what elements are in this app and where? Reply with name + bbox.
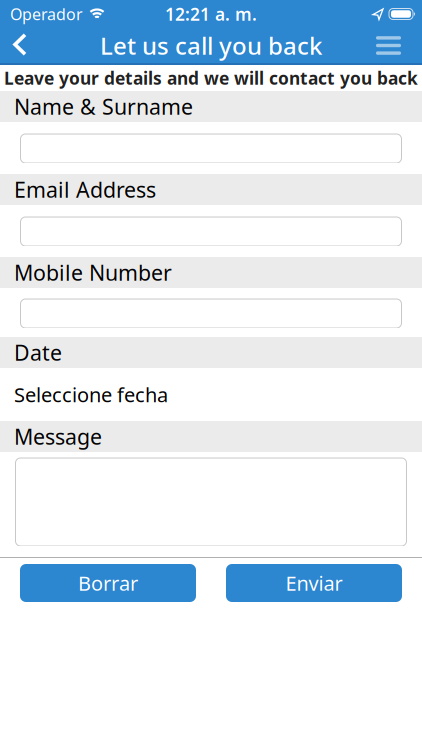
staticText: Message (14, 422, 102, 451)
button[interactable]: Enviar (226, 564, 402, 602)
staticText: Borrar (78, 570, 138, 596)
staticText: Name & Surname (14, 92, 193, 121)
button[interactable]: Menu (366, 30, 422, 61)
button[interactable]: Seleccione fecha (0, 368, 422, 421)
staticText: Let us call you back (100, 30, 322, 61)
button[interactable]: Back (0, 28, 37, 63)
button[interactable]: Text field (20, 134, 401, 163)
staticText: Mobile Number (14, 258, 172, 287)
staticText: Leave your details and we will contact y… (4, 66, 418, 89)
button[interactable]: Text field (20, 299, 401, 328)
button[interactable]: Text field (20, 217, 401, 246)
staticText: Seleccione fecha (14, 381, 168, 408)
button[interactable]: Borrar (20, 564, 196, 602)
staticText: Operador (10, 3, 83, 25)
staticText: Enviar (285, 570, 342, 596)
staticText: 12:21 a. m. (165, 2, 257, 25)
staticText: Date (14, 338, 62, 367)
button[interactable]: Message text area (15, 458, 406, 546)
staticText: Email Address (14, 175, 156, 204)
